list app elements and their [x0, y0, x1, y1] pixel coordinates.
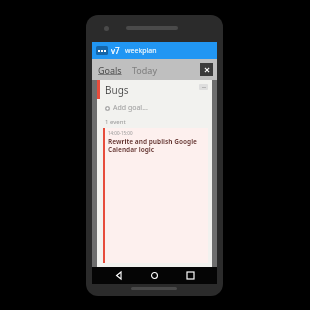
button[interactable]: Home [146, 267, 163, 284]
staticText: Add goal... [113, 103, 148, 113]
button[interactable]: Close [200, 63, 213, 76]
button[interactable]: Recent apps [182, 267, 199, 284]
staticText: 14:00-15:00 [108, 130, 133, 136]
button[interactable]: Today [131, 61, 158, 79]
button[interactable]: Goals [97, 61, 123, 79]
button[interactable]: Bugs [97, 80, 212, 267]
button[interactable]: App icon [96, 46, 108, 55]
button[interactable]: 14:00-15:00 [103, 128, 208, 263]
staticText: weekplan [125, 46, 157, 56]
button[interactable]: Back [111, 267, 128, 284]
staticText: Rewrite and publish Google Calendar logi… [108, 137, 205, 154]
staticText: 1 event [105, 118, 126, 126]
staticText: Today [132, 64, 157, 76]
staticText: v7 [111, 45, 120, 56]
staticText: Bugs [105, 83, 129, 97]
staticText: Goals [98, 64, 122, 76]
button[interactable]: Card menu [199, 84, 208, 90]
button[interactable]: Add goal... [97, 99, 212, 117]
